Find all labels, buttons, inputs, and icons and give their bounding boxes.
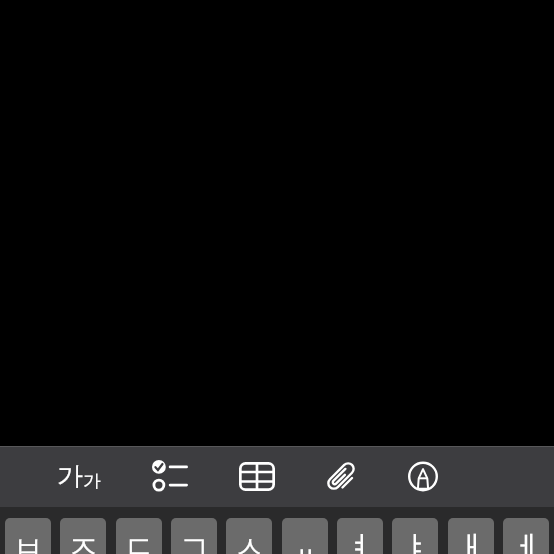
button[interactable]: ㅐ (448, 518, 494, 554)
staticText: ㅈ (68, 528, 99, 554)
button[interactable]: ㄱ (171, 518, 217, 554)
staticText: ㅂ (13, 528, 44, 554)
button[interactable]: ㅂ (5, 518, 51, 554)
staticText: ㅔ (511, 528, 542, 554)
button[interactable]: Table (233, 452, 281, 500)
staticText: ㅑ (400, 528, 431, 554)
button[interactable]: ㅔ (503, 518, 549, 554)
button[interactable]: Checklist (145, 452, 193, 500)
button[interactable]: ㅛ (282, 518, 328, 554)
button[interactable]: ㅑ (392, 518, 438, 554)
staticText: 가 (57, 460, 83, 493)
button[interactable]: 가 (50, 452, 107, 500)
button[interactable]: ㄷ (116, 518, 162, 554)
button[interactable]: Attach (317, 452, 365, 500)
button[interactable]: Draw (399, 452, 447, 500)
staticText: ㅕ (345, 528, 376, 554)
button[interactable]: ㅅ (226, 518, 272, 554)
button[interactable]: ㅕ (337, 518, 383, 554)
button[interactable]: ㅈ (60, 518, 106, 554)
staticText: 가 (83, 470, 101, 493)
staticText: ㄷ (124, 528, 155, 554)
staticText: ㅅ (234, 528, 265, 554)
staticText: ㅐ (456, 528, 487, 554)
staticText: ㄱ (179, 528, 210, 554)
staticText: ㅛ (290, 528, 321, 554)
